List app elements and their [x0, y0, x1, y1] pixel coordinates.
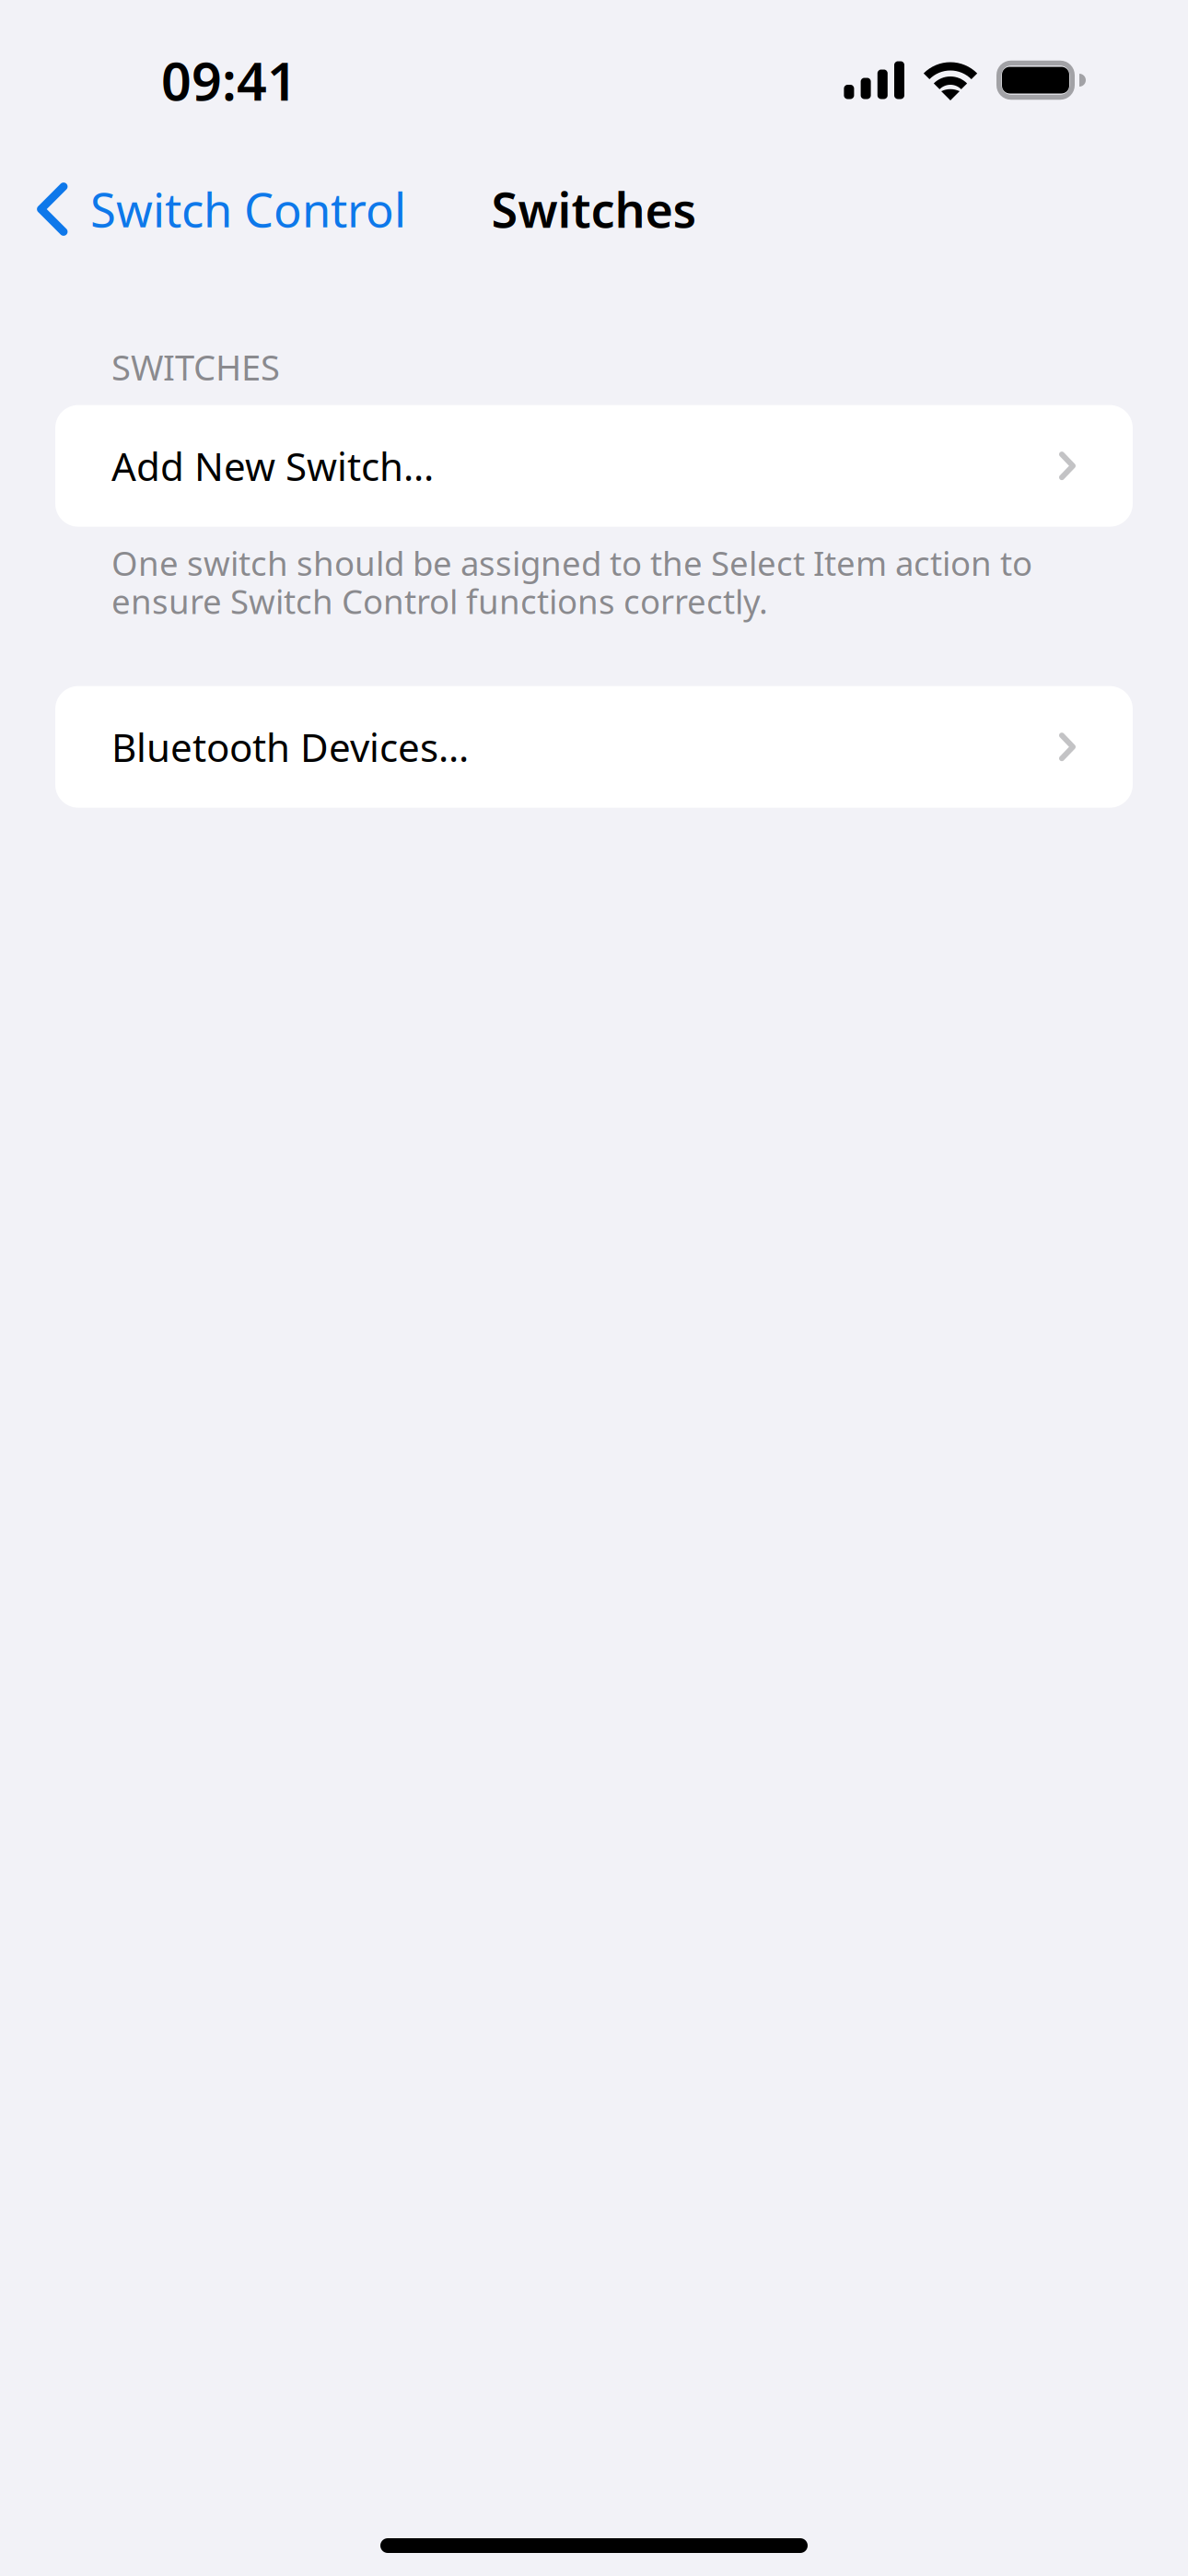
- button[interactable]: Switch Control: [0, 167, 428, 251]
- button[interactable]: Bluetooth Devices...: [55, 686, 1133, 808]
- button[interactable]: Add New Switch...: [55, 405, 1133, 527]
- staticText: Bluetooth Devices...: [111, 721, 469, 773]
- staticText: Add New Switch...: [111, 440, 434, 492]
- staticText: One switch should be assigned to the Sel…: [111, 540, 1032, 623]
- staticText: 09:41: [161, 45, 297, 115]
- staticText: Switches: [491, 177, 697, 241]
- staticText: SWITCHES: [111, 344, 280, 390]
- staticText: Switch Control: [90, 178, 406, 240]
